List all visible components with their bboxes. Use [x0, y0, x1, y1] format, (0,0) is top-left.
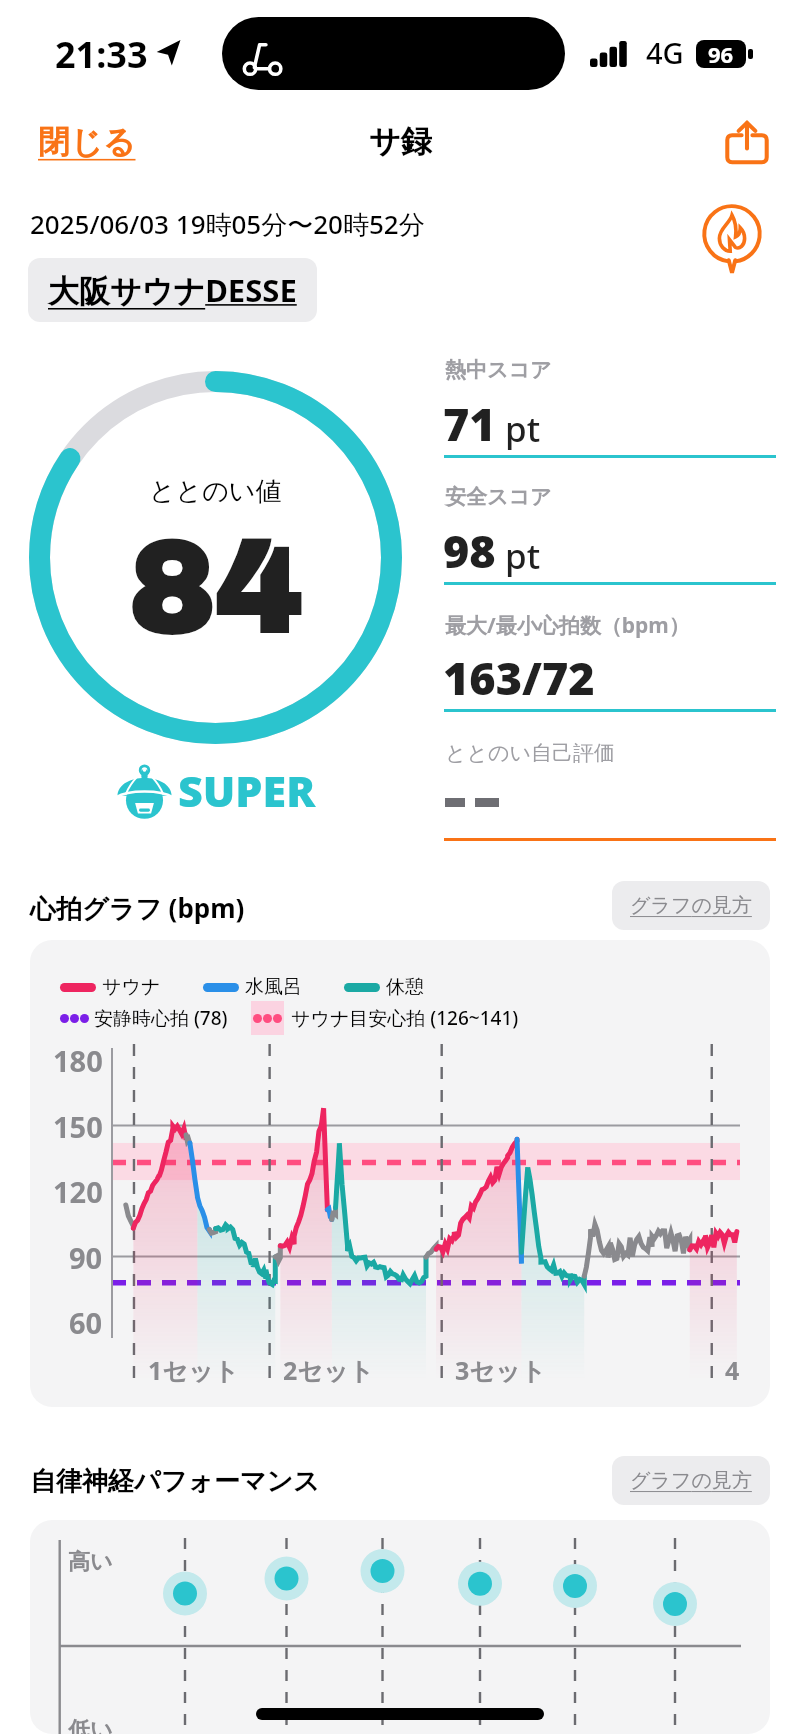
staticText: サ録 — [369, 122, 432, 161]
button[interactable]: Sauna location — [696, 204, 768, 276]
staticText: 21:33 — [55, 30, 148, 79]
staticText: 4 — [725, 1353, 740, 1387]
button[interactable]: グラフの見方 — [612, 881, 770, 930]
staticText: 98 — [443, 520, 496, 581]
staticText: 71 — [443, 393, 496, 454]
staticText: 熱中スコア — [445, 357, 552, 383]
staticText: 4G — [646, 33, 684, 72]
staticText: サウナ — [102, 975, 161, 999]
staticText: 最大/最小心拍数（bpm） — [445, 611, 690, 640]
staticText: 90 — [69, 1238, 103, 1277]
staticText: グラフの見方 — [630, 1468, 752, 1493]
staticText: ととのい値 — [149, 475, 282, 508]
button[interactable]: Share — [720, 116, 774, 170]
staticText: 2025/06/03 19時05分〜20時52分 — [30, 206, 425, 242]
staticText: 安静時心拍 (78) — [94, 1005, 228, 1031]
staticText: 60 — [69, 1303, 103, 1342]
staticText: pt — [505, 532, 541, 580]
staticText: 2セット — [283, 1353, 375, 1387]
staticText: 180 — [53, 1041, 103, 1080]
staticText: 安全スコア — [445, 484, 552, 510]
staticText: 150 — [53, 1107, 103, 1146]
staticText: pt — [505, 405, 541, 453]
staticText: 3セット — [455, 1353, 547, 1387]
staticText: 96 — [708, 40, 734, 67]
staticText: 84 — [129, 517, 303, 658]
staticText: 心拍グラフ (bpm) — [30, 890, 245, 926]
button[interactable]: グラフの見方 — [612, 1456, 770, 1505]
staticText: グラフの見方 — [630, 893, 752, 918]
staticText: サウナ目安心拍 (126~141) — [291, 1005, 519, 1031]
staticText: 163/72 — [443, 647, 595, 708]
staticText: 自律神経パフォーマンス — [30, 1465, 320, 1498]
staticText: 大阪サウナDESSE — [48, 269, 297, 311]
staticText: 低い — [68, 1716, 113, 1734]
staticText: SUPER — [178, 761, 316, 820]
staticText: 水風呂 — [245, 975, 302, 999]
staticText: ととのい自己評価 — [445, 740, 615, 766]
staticText: 休憩 — [386, 975, 424, 999]
staticText: 高い — [68, 1548, 113, 1576]
button[interactable]: 大阪サウナDESSE — [28, 258, 317, 322]
button[interactable]: 閉じる — [24, 114, 150, 170]
staticText: 120 — [53, 1172, 103, 1211]
staticText: 1セット — [148, 1353, 240, 1387]
staticText: 閉じる — [38, 122, 136, 162]
